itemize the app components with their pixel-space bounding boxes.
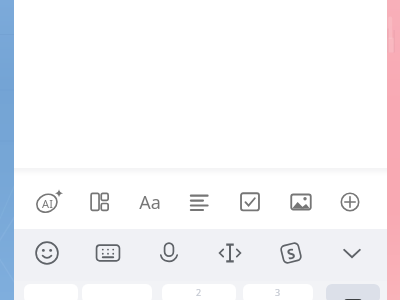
button[interactable]: Align xyxy=(182,184,218,220)
staticText: S xyxy=(285,243,297,264)
staticText: Aa xyxy=(139,190,161,215)
button[interactable]: Collapse xyxy=(334,235,370,271)
staticText: 3 xyxy=(275,286,281,298)
button[interactable]: Stickers xyxy=(273,235,309,271)
button[interactable]: Add xyxy=(332,184,368,220)
button[interactable]: AI assist xyxy=(31,184,67,220)
staticText: 2 xyxy=(196,286,202,298)
button[interactable]: 2 xyxy=(162,284,236,300)
button[interactable]: Checklist xyxy=(232,184,268,220)
button[interactable]: Emoji xyxy=(29,235,65,271)
button[interactable]: 3 xyxy=(243,284,313,300)
button[interactable]: Layout xyxy=(82,184,118,220)
button[interactable]: Backspace xyxy=(326,284,380,300)
staticText: AI xyxy=(42,196,53,211)
button[interactable]: Image xyxy=(283,184,319,220)
button[interactable]: Voice input xyxy=(151,235,187,271)
button[interactable]: Aa xyxy=(132,184,168,220)
button[interactable]: Move cursor xyxy=(212,235,248,271)
button[interactable]: Keyboard xyxy=(90,235,126,271)
